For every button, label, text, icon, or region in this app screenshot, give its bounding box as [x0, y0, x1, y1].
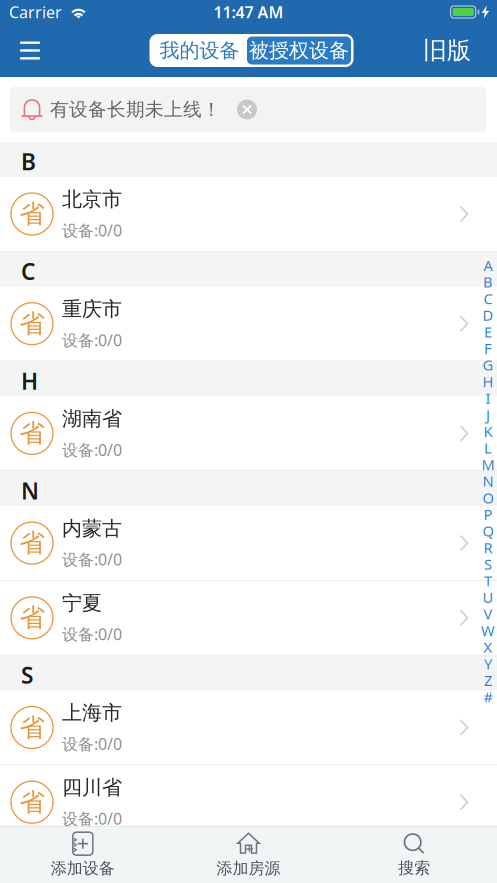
staticText: H [482, 372, 493, 391]
staticText: N [21, 475, 39, 506]
staticText: 搜索 [398, 858, 430, 878]
staticText: I [485, 388, 490, 408]
staticText: V [483, 604, 492, 624]
staticText: Q [482, 521, 493, 541]
button[interactable]: 省 [0, 690, 497, 765]
staticText: 设备:0/0 [62, 733, 122, 754]
button[interactable]: 省 [0, 765, 497, 840]
staticText: 添加房源 [216, 859, 280, 878]
staticText: 设备:0/0 [62, 329, 122, 351]
staticText: 省 [19, 527, 44, 559]
staticText: B [483, 272, 493, 292]
staticText: B [21, 146, 36, 176]
staticText: 北京市 [62, 187, 122, 212]
button[interactable]: 搜索 [331, 827, 497, 883]
staticText: W [481, 621, 495, 640]
button[interactable]: 省 [0, 840, 497, 883]
staticText: 设备:0/0 [62, 439, 122, 460]
staticText: X [483, 637, 492, 657]
staticText: Carrier [9, 1, 62, 23]
staticText: J [486, 405, 490, 424]
button[interactable]: 被授权设备 [247, 36, 351, 64]
staticText: M [481, 455, 494, 474]
staticText: 重庆市 [62, 297, 122, 321]
staticText: 山东省 [62, 850, 122, 875]
button[interactable]: 省 [0, 581, 497, 655]
staticText: 旧版 [423, 36, 471, 65]
staticText: G [482, 355, 493, 375]
staticText: C [483, 289, 492, 308]
button[interactable]: 添加设备 [0, 827, 166, 883]
staticText: 设备:0/0 [62, 808, 122, 829]
staticText: E [484, 322, 492, 341]
button[interactable]: 我的设备 [152, 36, 247, 64]
staticText: 省 [19, 787, 44, 818]
staticText: T [484, 571, 492, 590]
button[interactable]: 添加房源 [166, 827, 331, 883]
staticText: D [482, 305, 493, 325]
button[interactable]: 旧版 [423, 24, 497, 77]
staticText: 四川省 [62, 775, 122, 800]
staticText: O [482, 488, 493, 507]
staticText: 设备:0/0 [62, 220, 122, 241]
staticText: 省 [19, 712, 44, 743]
staticText: 被授权设备 [249, 38, 349, 63]
staticText: 宁夏 [62, 591, 102, 615]
staticText: 省 [19, 418, 44, 449]
staticText: S [21, 660, 33, 690]
staticText: C [21, 256, 35, 286]
button[interactable]: 省 [0, 177, 497, 252]
staticText: 省 [19, 198, 44, 229]
staticText: 湖南省 [62, 406, 122, 431]
button[interactable]: 省 [0, 506, 497, 581]
button[interactable]: 省 [0, 396, 497, 471]
staticText: 设备:0/0 [62, 623, 122, 645]
staticText: 上海市 [62, 701, 122, 725]
staticText: Y [484, 654, 492, 673]
staticText: P [483, 505, 492, 524]
button[interactable]: 省 [0, 287, 497, 361]
staticText: A [483, 256, 492, 275]
staticText: 省 [19, 308, 44, 339]
staticText: S [484, 554, 492, 574]
staticText: R [483, 538, 492, 557]
staticText: F [484, 339, 492, 358]
staticText: 11:47 AM [213, 1, 283, 23]
staticText: 有设备长期未上线！ [50, 98, 221, 121]
staticText: 内蒙古 [62, 516, 122, 541]
staticText: K [483, 422, 492, 441]
staticText: 我的设备 [159, 38, 239, 63]
button[interactable]: Dismiss [221, 87, 265, 132]
staticText: L [484, 438, 492, 458]
staticText: U [482, 588, 493, 607]
button[interactable]: Menu [0, 24, 56, 77]
staticText: H [21, 366, 38, 396]
staticText: N [482, 471, 493, 491]
staticText: # [483, 687, 492, 707]
staticText: 省 [19, 602, 44, 633]
staticText: Z [484, 671, 492, 690]
staticText: 设备:0/0 [62, 549, 122, 570]
staticText: 添加设备 [51, 859, 115, 878]
